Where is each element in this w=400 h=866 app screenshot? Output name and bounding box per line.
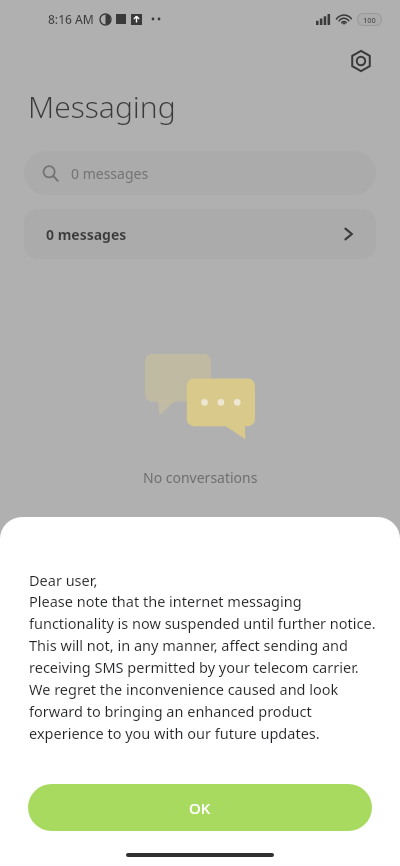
button[interactable]: 0 messages [24,209,376,259]
staticText: No conversations [143,468,258,487]
staticText: Dear user, Please note that the internet… [29,570,380,744]
staticText: 0 messages [46,225,127,244]
staticText: 100 [363,15,376,25]
staticText: OK [189,798,211,818]
button[interactable]: Settings [344,44,378,78]
staticText: 0 messages [71,164,149,183]
staticText: Messaging [28,86,176,127]
button[interactable]: OK [28,784,372,831]
button[interactable]: 0 messages [24,151,376,195]
staticText: 8:16 AM [48,11,94,27]
